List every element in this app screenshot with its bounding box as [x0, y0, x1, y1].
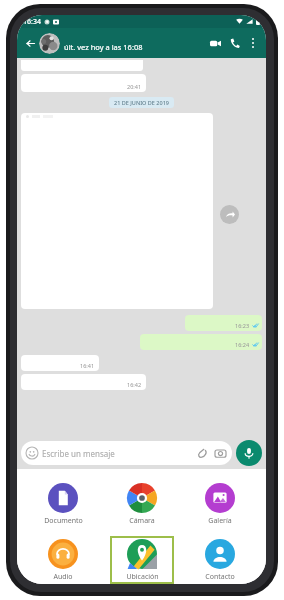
button[interactable]: Contacto	[188, 536, 252, 584]
button[interactable]: 16:23	[185, 315, 262, 331]
button[interactable]: Forward	[220, 205, 239, 224]
staticText: Contacto	[205, 572, 235, 580]
button[interactable]: 16:42	[21, 374, 146, 390]
button[interactable]: Cámara	[110, 480, 174, 530]
staticText: 16:41	[80, 362, 95, 369]
staticText: Audio	[53, 572, 73, 580]
button[interactable]: 16:24	[140, 334, 262, 350]
button[interactable]: Galería	[188, 480, 252, 530]
button[interactable]: Escribe un mensaje	[21, 441, 232, 465]
button[interactable]: 20:41	[21, 74, 146, 92]
button[interactable]: Back	[22, 35, 38, 51]
button[interactable]: últ. vez hoy a las 16:08	[64, 35, 206, 52]
button[interactable]: Attach	[195, 446, 209, 460]
staticText: Ubicación	[126, 572, 159, 580]
button[interactable]: More options	[245, 35, 261, 51]
button[interactable]: Audio	[31, 536, 95, 584]
button[interactable]: Record voice message	[236, 440, 262, 466]
staticText: Cámara	[129, 516, 155, 526]
button[interactable]: Voice call	[226, 34, 244, 52]
staticText: 16:34	[23, 17, 41, 27]
staticText: 16:23	[235, 322, 250, 329]
staticText: 21 DE JUNIO DE 2019	[114, 99, 169, 106]
staticText: Galería	[208, 516, 232, 526]
staticText: Escribe un mensaje	[42, 448, 115, 459]
staticText: Documento	[44, 516, 83, 526]
button[interactable]: 16:41	[21, 355, 99, 371]
button[interactable]: Ubicación	[110, 536, 174, 584]
staticText: 16:42	[127, 381, 142, 388]
staticText: últ. vez hoy a las 16:08	[64, 42, 143, 52]
button[interactable]: Contact photo	[39, 33, 60, 54]
staticText: 16:24	[235, 341, 250, 348]
staticText: 20:41	[127, 83, 142, 90]
button[interactable]: Camera	[213, 446, 227, 460]
button[interactable]: Video call	[206, 34, 224, 52]
button[interactable]: Documento	[31, 480, 95, 530]
